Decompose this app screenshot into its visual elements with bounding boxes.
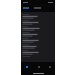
button[interactable]: Tab — [44, 62, 55, 72]
button[interactable]: Tab — [21, 62, 33, 72]
button[interactable]: Tab — [33, 62, 44, 72]
